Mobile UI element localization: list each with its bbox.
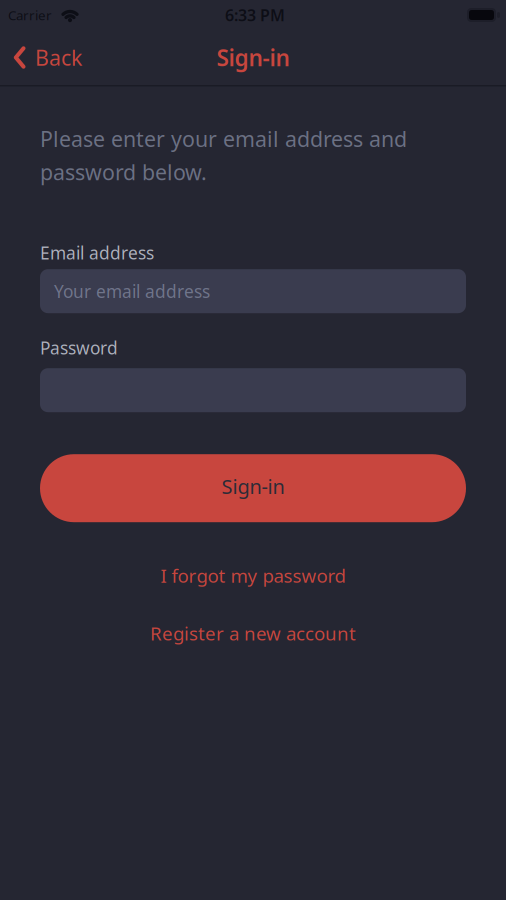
staticText: 6:33 PM [225, 4, 285, 26]
staticText: Please enter your email address and pass… [40, 124, 407, 186]
staticText: Sign-in [216, 42, 289, 72]
staticText: Register a new account [150, 621, 356, 646]
staticText: I forgot my password [160, 563, 345, 588]
staticText: Sign-in [221, 473, 284, 499]
staticText: Your email address [54, 280, 210, 303]
staticText: Back [35, 43, 82, 72]
staticText: Password [40, 336, 118, 359]
staticText: Email address [40, 241, 154, 264]
staticText: Carrier [8, 6, 52, 24]
